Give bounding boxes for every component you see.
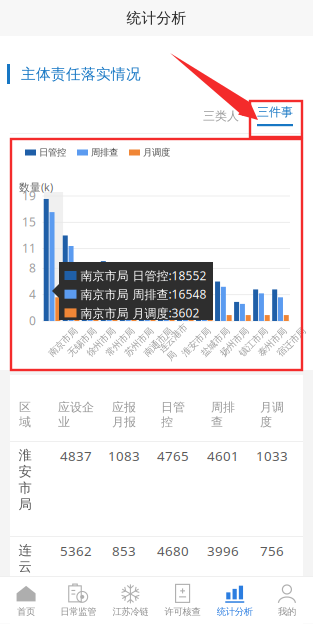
staticText: 淮安市局 bbox=[18, 447, 31, 512]
button[interactable]: 许可核查 bbox=[156, 577, 209, 624]
staticText: 连云港市局 bbox=[160, 333, 196, 356]
staticText: 应报月报 bbox=[112, 400, 136, 429]
staticText: 应设企业 bbox=[58, 400, 94, 429]
staticText: 三类人 bbox=[203, 109, 239, 123]
staticText: 19 bbox=[22, 187, 36, 203]
staticText: 许可核查 bbox=[165, 606, 201, 617]
button[interactable]: 我的 bbox=[261, 577, 313, 624]
staticText: 0 bbox=[29, 312, 36, 328]
staticText: 4765 bbox=[157, 447, 189, 465]
staticText: 扬州市局 bbox=[217, 339, 253, 351]
staticText: 宿迁市局 bbox=[274, 339, 310, 351]
staticText: 853 bbox=[112, 542, 136, 560]
staticText: 泰州市局 bbox=[255, 339, 291, 351]
staticText: 日管控 bbox=[39, 147, 66, 158]
staticText: 15 bbox=[22, 214, 36, 230]
staticText: 南京市局 日管控:18552 bbox=[80, 267, 206, 283]
staticText: 4680 bbox=[157, 542, 189, 560]
staticText: 南京市局 bbox=[46, 339, 82, 351]
staticText: 南京市局 周排查:16548 bbox=[80, 286, 206, 302]
button[interactable]: 江苏冷链 bbox=[104, 577, 156, 624]
staticText: 5362 bbox=[60, 542, 92, 560]
button[interactable]: 日常监管 bbox=[52, 577, 104, 624]
staticText: 周排查 bbox=[211, 400, 235, 429]
button[interactable]: 三件事 bbox=[257, 101, 293, 131]
staticText: 4 bbox=[29, 286, 36, 302]
staticText: 盐城市局 bbox=[198, 339, 234, 351]
staticText: 8 bbox=[29, 260, 36, 276]
staticText: 周排查 bbox=[91, 147, 118, 158]
staticText: 4601 bbox=[207, 447, 239, 465]
staticText: 主体责任落实情况 bbox=[21, 65, 141, 83]
staticText: 我的 bbox=[278, 606, 296, 617]
staticText: 苏州市局 bbox=[122, 339, 158, 351]
staticText: 1033 bbox=[256, 447, 288, 465]
staticText: 南京市局 月调度:3602 bbox=[80, 305, 199, 321]
staticText: 徐州市局 bbox=[84, 339, 120, 351]
staticText: 连云港市局 bbox=[18, 542, 31, 624]
staticText: 首页 bbox=[17, 606, 35, 617]
staticText: 4837 bbox=[60, 447, 92, 465]
staticText: 数量(k) bbox=[19, 180, 53, 194]
staticText: 3996 bbox=[207, 542, 239, 560]
button[interactable]: 统计分析 bbox=[209, 577, 261, 624]
staticText: 月调度 bbox=[260, 400, 284, 429]
staticText: 统计分析 bbox=[126, 9, 186, 27]
staticText: 三件事 bbox=[257, 105, 293, 119]
staticText: 日管控 bbox=[161, 400, 185, 429]
staticText: 常州市局 bbox=[103, 339, 139, 351]
button[interactable]: 首页 bbox=[0, 577, 52, 624]
staticText: 日常监管 bbox=[60, 606, 96, 617]
staticText: 1083 bbox=[108, 447, 140, 465]
staticText: 11 bbox=[22, 240, 36, 256]
button[interactable]: 三类人 bbox=[203, 101, 239, 131]
staticText: 区域 bbox=[19, 400, 31, 429]
staticText: 南通市局 bbox=[141, 339, 177, 351]
staticText: 无锡市局 bbox=[65, 339, 101, 351]
staticText: 756 bbox=[260, 542, 284, 560]
staticText: 月调度 bbox=[143, 147, 170, 158]
staticText: 统计分析 bbox=[217, 606, 253, 617]
staticText: 淮安市局 bbox=[179, 339, 215, 351]
staticText: 镇江市局 bbox=[236, 339, 272, 351]
staticText: 江苏冷链 bbox=[112, 606, 148, 617]
